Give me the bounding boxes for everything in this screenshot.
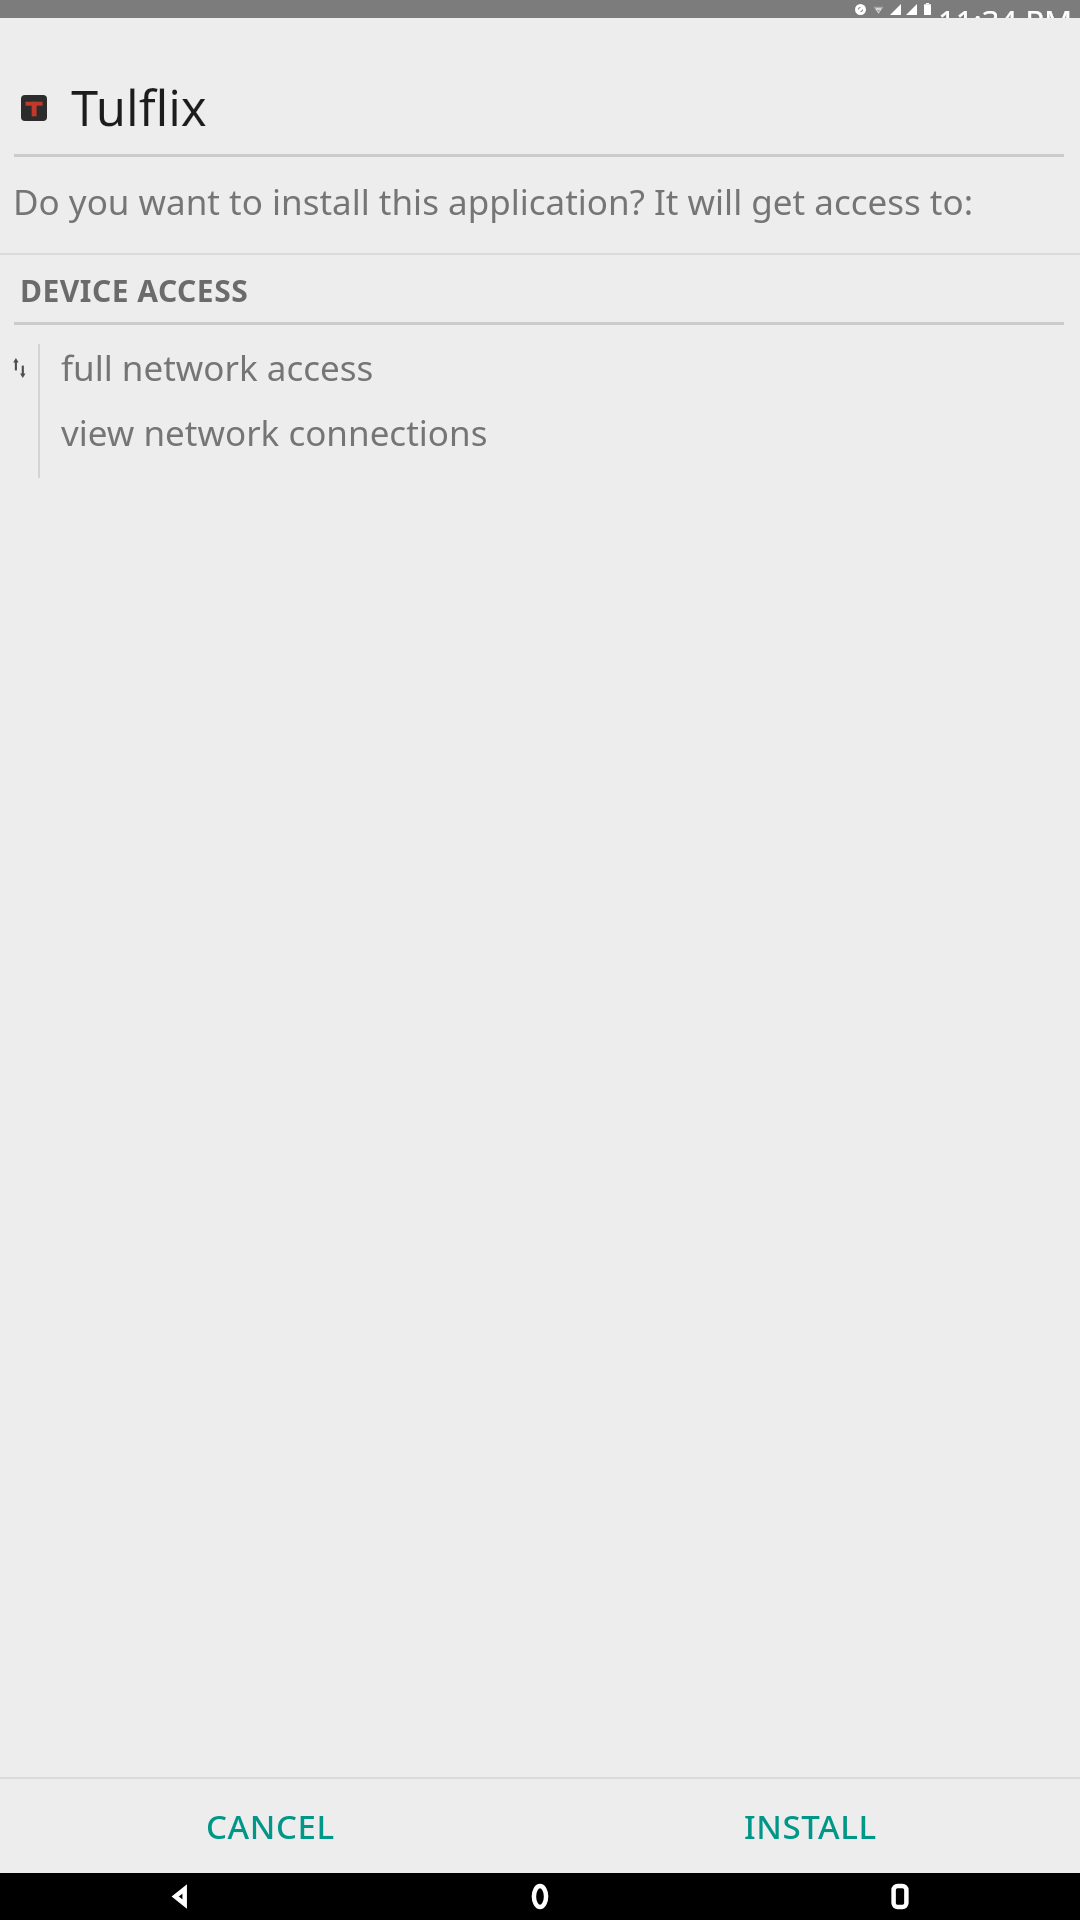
- staticText: Do you want to install this application?…: [13, 178, 974, 226]
- button[interactable]: CANCEL: [0, 1779, 540, 1873]
- button[interactable]: Recents: [720, 1873, 1080, 1920]
- staticText: view network connections: [61, 409, 488, 457]
- staticText: CANCEL: [206, 1804, 335, 1849]
- staticText: INSTALL: [744, 1804, 877, 1849]
- staticText: 11:34 PM: [938, 0, 1073, 18]
- button[interactable]: INSTALL: [540, 1779, 1080, 1873]
- button[interactable]: Back: [0, 1873, 360, 1920]
- staticText: DEVICE ACCESS: [20, 270, 249, 311]
- staticText: Tulflix: [71, 74, 207, 141]
- staticText: full network access: [61, 344, 374, 392]
- button[interactable]: Home: [360, 1873, 720, 1920]
